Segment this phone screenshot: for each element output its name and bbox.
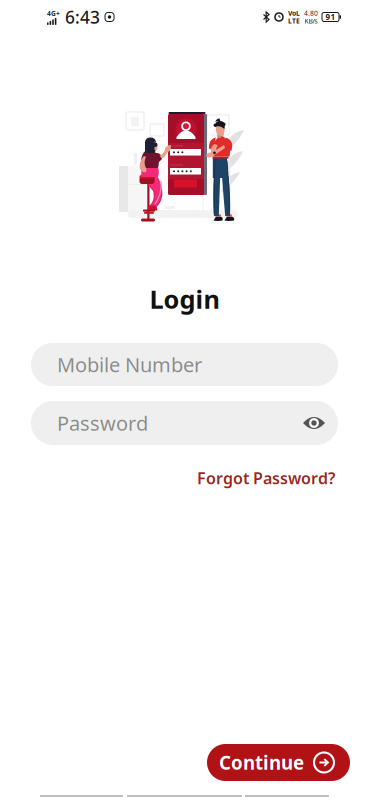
button[interactable]: Mobile Number — [31, 343, 338, 386]
staticText: VoL — [288, 9, 300, 17]
staticText: KB/s — [304, 16, 317, 25]
button[interactable]: Password — [31, 401, 338, 445]
button[interactable]: Forgot Password? — [197, 468, 335, 488]
staticText: Mobile Number — [57, 351, 202, 378]
staticText: Forgot Password? — [197, 467, 335, 489]
staticText: 91 — [325, 12, 335, 22]
staticText: LTE — [288, 16, 300, 25]
staticText: Continue — [219, 750, 304, 775]
staticText: 6:43 — [65, 5, 100, 28]
staticText: Login — [149, 282, 219, 316]
staticText: 4G+ — [47, 9, 60, 18]
staticText: 4.80 — [304, 9, 318, 17]
button[interactable]: Continue — [207, 744, 350, 781]
staticText: Password — [57, 410, 148, 436]
